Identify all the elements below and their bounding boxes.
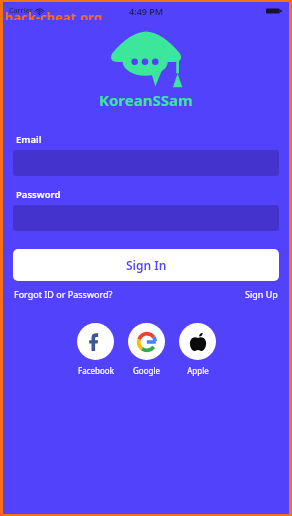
staticText: Sign In [126, 257, 167, 273]
staticText: 4:49 PM [129, 5, 164, 17]
staticText: Google [133, 365, 160, 376]
button[interactable]: Sign in with Google [128, 323, 165, 360]
staticText: Sign Up [245, 288, 278, 300]
staticText: hack-cheat.org [5, 8, 103, 20]
button[interactable]: Forgot ID or Password? [14, 288, 113, 300]
staticText: Apple [187, 365, 209, 376]
staticText: Password [16, 188, 61, 201]
button[interactable]: Sign in with Apple [179, 323, 216, 360]
button[interactable]: Sign Up [245, 288, 278, 300]
staticText: KoreanSSam [99, 90, 193, 110]
staticText: Carrier [9, 6, 33, 16]
staticText: Forgot ID or Password? [14, 288, 113, 300]
button[interactable]: Sign In [13, 249, 279, 281]
staticText: Facebook [78, 365, 114, 376]
staticText: Email [16, 133, 42, 146]
button[interactable]: Sign in with Facebook [77, 323, 114, 360]
